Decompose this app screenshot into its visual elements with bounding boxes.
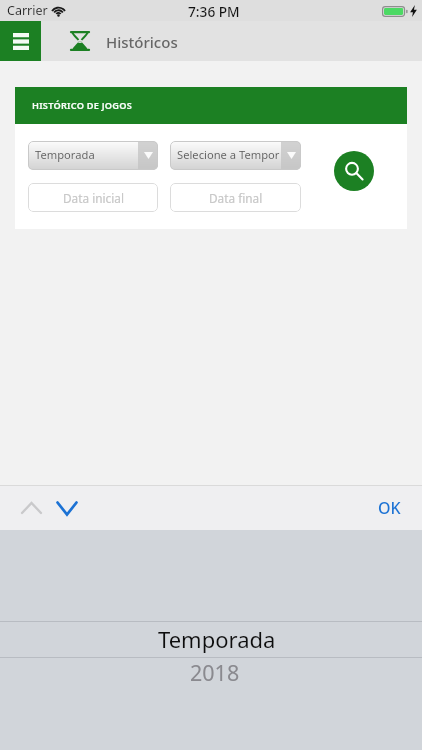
staticText: Selecione a Tempor	[177, 147, 280, 162]
button[interactable]: Next	[49, 486, 85, 530]
button[interactable]: Data inicial	[28, 183, 158, 212]
staticText: HISTÓRICO DE JOGOS	[32, 99, 133, 112]
button[interactable]: Previous	[13, 486, 49, 530]
staticText: OK	[378, 497, 401, 519]
staticText: 2018	[190, 658, 240, 687]
staticText: Temporada	[158, 624, 276, 654]
staticText: Carrier	[7, 2, 48, 19]
button[interactable]: Selecione a Tempor	[170, 141, 301, 170]
button[interactable]: OK	[357, 486, 422, 530]
staticText: Data final	[209, 190, 263, 206]
staticText: Históricos	[106, 32, 178, 52]
button[interactable]: Data final	[170, 183, 301, 212]
button[interactable]: Search	[334, 151, 374, 191]
button[interactable]: Menu	[0, 21, 41, 61]
staticText: 7:36 PM	[188, 2, 240, 21]
staticText: Data inicial	[63, 190, 124, 206]
staticText: Temporada	[35, 147, 95, 162]
button[interactable]: Temporada	[28, 141, 158, 170]
